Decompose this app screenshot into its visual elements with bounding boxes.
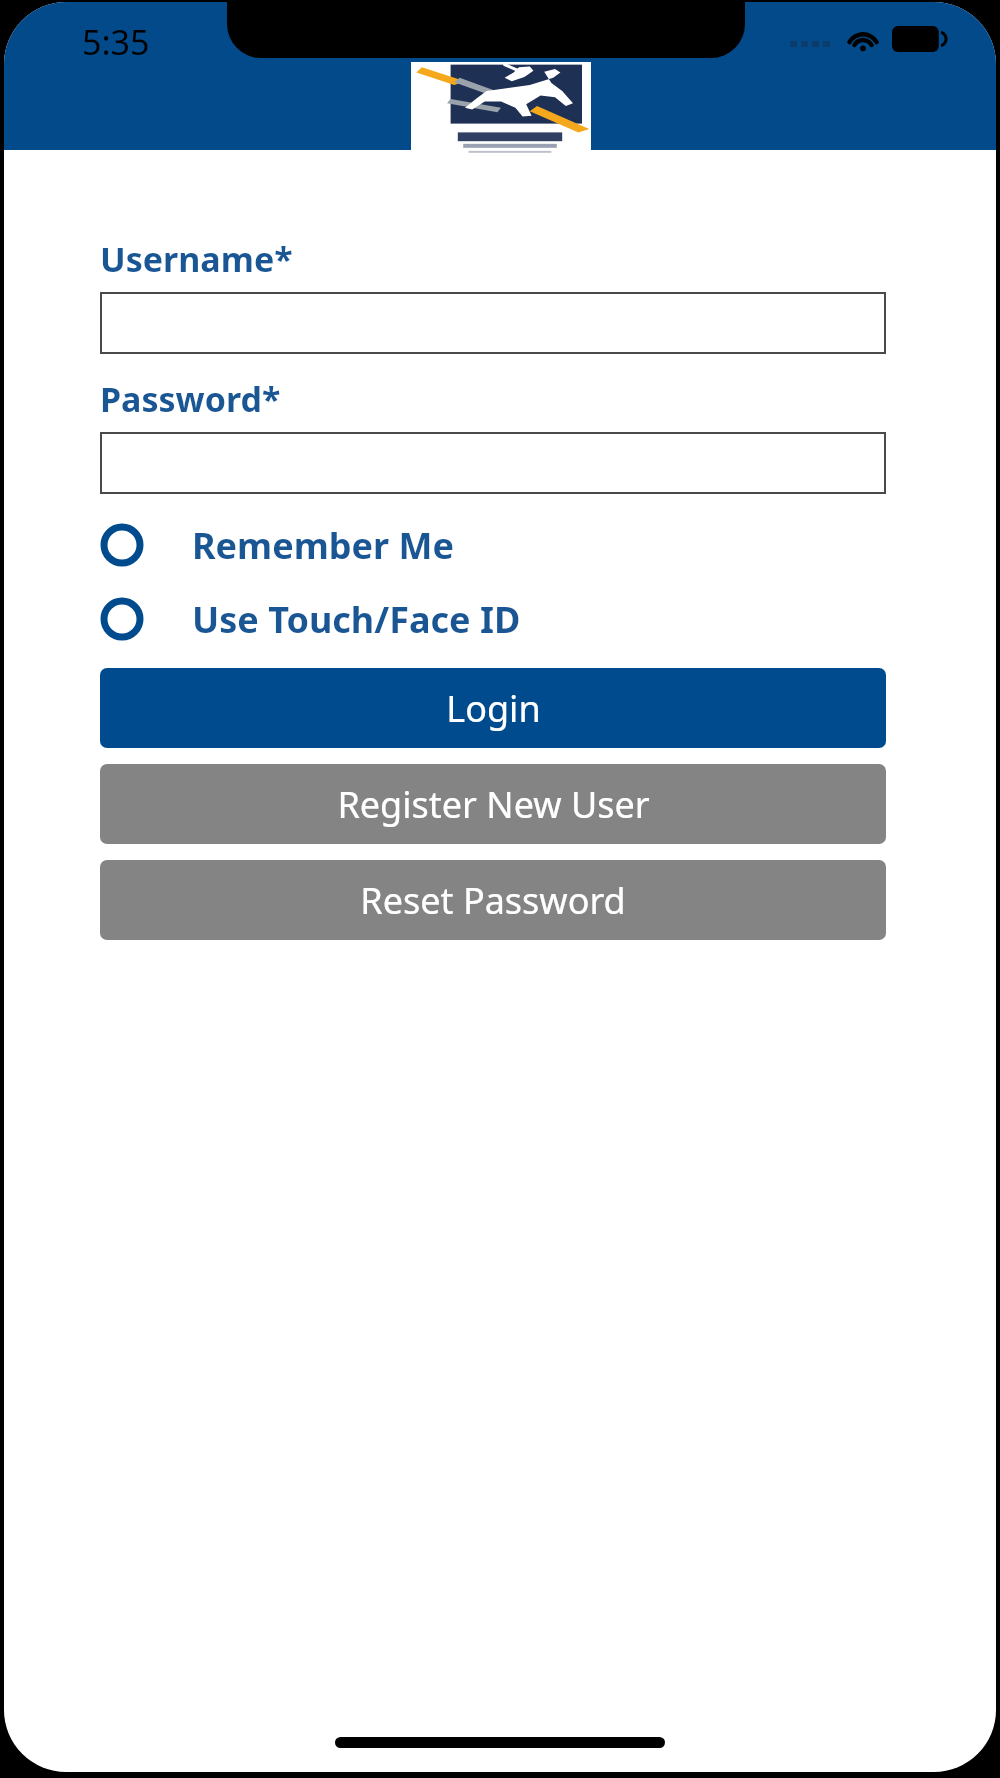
staticText: 5:35 (82, 19, 150, 65)
staticText: Password* (100, 376, 281, 422)
staticText: Reset Password (360, 876, 626, 925)
button[interactable] (100, 432, 886, 494)
button[interactable]: Remember Me (100, 514, 886, 576)
staticText: Username* (100, 236, 293, 282)
staticText: Remember Me (192, 521, 454, 570)
staticText: Login (446, 684, 541, 733)
button[interactable]: Use Touch/Face ID (100, 588, 886, 650)
button[interactable] (100, 292, 886, 354)
button[interactable]: Register New User (100, 764, 886, 844)
staticText: Register New User (337, 780, 650, 829)
staticText: Use Touch/Face ID (192, 595, 521, 644)
button[interactable]: Login (100, 668, 886, 748)
button[interactable]: Reset Password (100, 860, 886, 940)
